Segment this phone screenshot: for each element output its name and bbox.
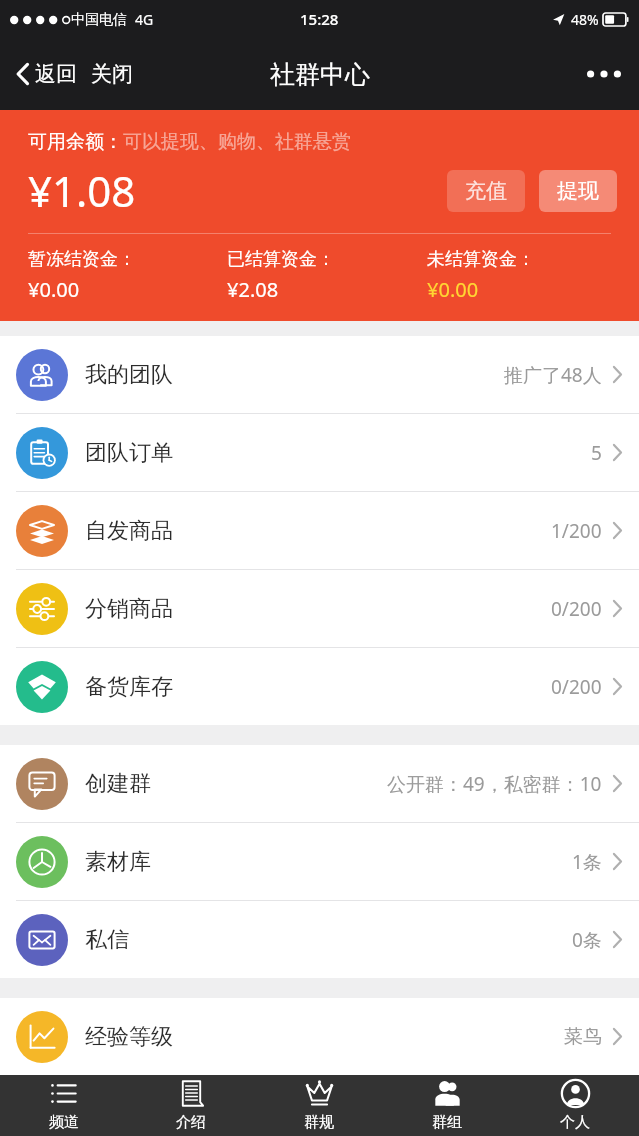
- staticText: 中国电信: [71, 11, 127, 29]
- staticText: 公开群：49，私密群：10: [387, 771, 602, 797]
- staticText: 私信: [85, 926, 129, 954]
- button[interactable]: More options: [569, 52, 639, 96]
- staticText: 群规: [304, 1113, 334, 1132]
- staticText: 素材库: [85, 848, 151, 876]
- staticText: 个人: [560, 1113, 590, 1132]
- staticText: 已结算资金：: [227, 248, 335, 271]
- staticText: 经验等级: [85, 1023, 173, 1051]
- staticText: ¥0.00: [28, 276, 80, 303]
- button[interactable]: 频道: [0, 1075, 127, 1136]
- staticText: 4G: [135, 10, 154, 29]
- button[interactable]: 团队订单: [0, 414, 639, 491]
- staticText: 提现: [557, 178, 599, 204]
- staticText: 群组: [432, 1113, 462, 1132]
- staticText: 创建群: [85, 770, 151, 798]
- button[interactable]: 群规: [255, 1075, 383, 1136]
- button[interactable]: 个人: [511, 1075, 639, 1136]
- staticText: 未结算资金：: [427, 248, 535, 271]
- staticText: 1/200: [551, 518, 602, 544]
- staticText: 可用余额：: [28, 130, 123, 154]
- staticText: 0/200: [551, 596, 602, 622]
- button[interactable]: 分销商品: [0, 570, 639, 647]
- staticText: 15:28: [300, 9, 339, 29]
- staticText: 充值: [465, 178, 507, 204]
- staticText: 备货库存: [85, 673, 173, 701]
- button[interactable]: 备货库存: [0, 648, 639, 725]
- button[interactable]: 私信: [0, 901, 639, 978]
- button[interactable]: 提现: [539, 170, 617, 212]
- staticText: ¥0.00: [427, 276, 479, 303]
- staticText: 介绍: [176, 1113, 206, 1132]
- button[interactable]: 返回: [0, 51, 83, 97]
- staticText: 菜鸟: [564, 1025, 602, 1049]
- button[interactable]: 素材库: [0, 823, 639, 900]
- button[interactable]: 充值: [447, 170, 525, 212]
- staticText: 社群中心: [270, 59, 370, 90]
- button[interactable]: 创建群: [0, 745, 639, 822]
- button[interactable]: 关闭: [83, 51, 141, 97]
- staticText: 暂冻结资金：: [28, 248, 136, 271]
- staticText: 可以提现、购物、社群悬赏: [123, 130, 351, 154]
- staticText: 48%: [571, 10, 599, 29]
- staticText: 频道: [49, 1113, 79, 1132]
- button[interactable]: 我的团队: [0, 336, 639, 413]
- staticText: 团队订单: [85, 439, 173, 467]
- staticText: 关闭: [91, 61, 133, 87]
- staticText: 5: [591, 440, 602, 466]
- button[interactable]: 介绍: [127, 1075, 255, 1136]
- staticText: 推广了48人: [504, 362, 602, 388]
- staticText: 自发商品: [85, 517, 173, 545]
- staticText: 分销商品: [85, 595, 173, 623]
- staticText: ¥1.08: [28, 162, 136, 219]
- button[interactable]: 自发商品: [0, 492, 639, 569]
- staticText: ¥2.08: [227, 276, 279, 303]
- button[interactable]: 群组: [383, 1075, 511, 1136]
- staticText: 返回: [35, 61, 77, 87]
- button[interactable]: 经验等级: [0, 998, 639, 1075]
- staticText: 1条: [572, 849, 602, 875]
- staticText: 0条: [572, 927, 602, 953]
- staticText: 0/200: [551, 674, 602, 700]
- staticText: 我的团队: [85, 361, 173, 389]
